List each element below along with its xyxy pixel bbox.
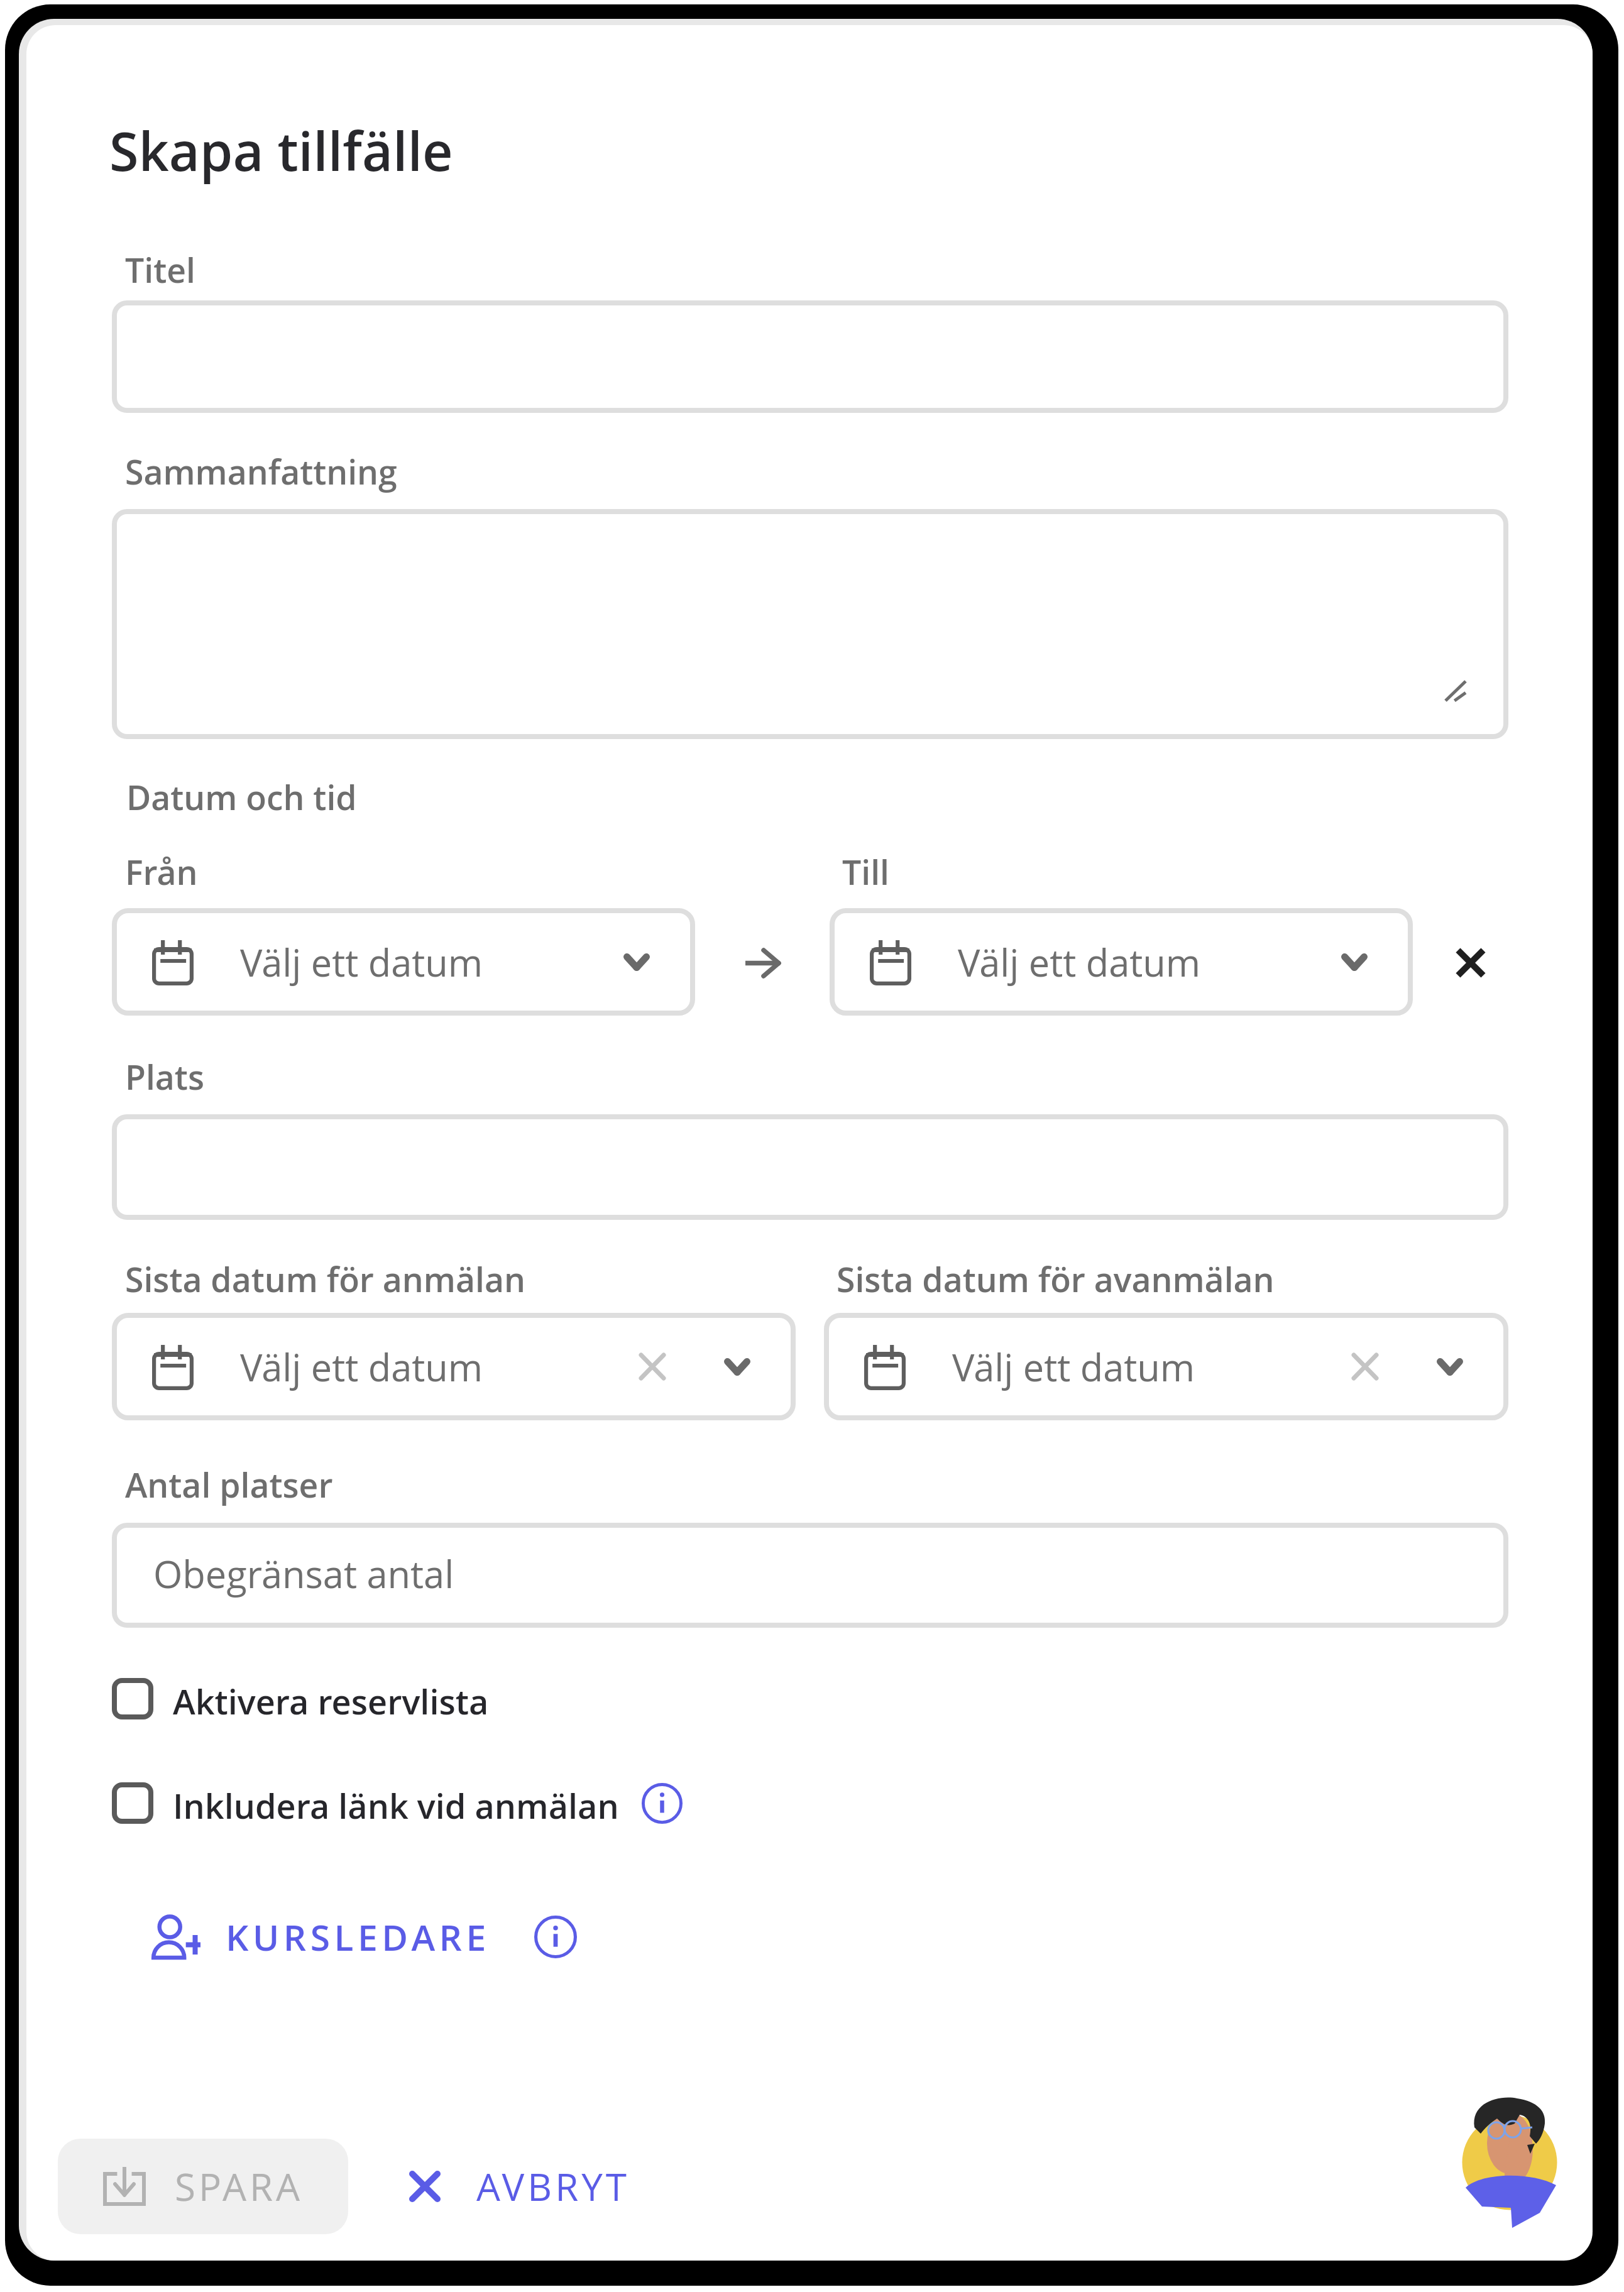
button[interactable] — [112, 300, 1508, 413]
staticText: AVBRYT — [476, 2161, 630, 2212]
staticText: Välj ett datum — [240, 936, 483, 987]
button[interactable]: Välj ett datum — [830, 908, 1413, 1016]
staticText: Obegränsat antal — [153, 1548, 454, 1599]
button[interactable]: Information — [642, 1783, 683, 1824]
button[interactable] — [112, 1523, 1508, 1628]
staticText: Titel — [125, 247, 195, 293]
button[interactable]: Hjälp och support — [1462, 2093, 1557, 2237]
staticText: Skapa tillfälle — [109, 114, 453, 187]
staticText: Välj ett datum — [240, 1341, 483, 1392]
button[interactable]: Välj ett datum — [112, 1313, 796, 1420]
staticText: Till — [842, 849, 890, 895]
staticText: KURSLEDARE — [226, 1912, 490, 1961]
staticText: Sista datum för avanmälan — [837, 1256, 1275, 1302]
staticText: Från — [125, 849, 198, 895]
staticText: Plats — [125, 1054, 204, 1100]
staticText: Aktivera reservlista — [173, 1678, 489, 1719]
button[interactable]: AVBRYT — [379, 2139, 661, 2234]
button[interactable]: Aktivera reservlista — [112, 1678, 489, 1719]
staticText: Datum och tid — [126, 774, 357, 820]
button[interactable]: Ta bort datum — [1446, 938, 1496, 988]
button[interactable]: Välj ett datum — [824, 1313, 1508, 1420]
button[interactable] — [112, 1114, 1508, 1220]
staticText: Sammanfattning — [125, 449, 397, 495]
button[interactable]: Välj ett datum — [112, 908, 695, 1016]
staticText: Antal platser — [125, 1462, 333, 1508]
button[interactable] — [112, 509, 1508, 739]
staticText: Välj ett datum — [952, 1341, 1195, 1392]
staticText: Inkludera länk vid anmälan — [173, 1782, 619, 1824]
button[interactable]: Information — [534, 1916, 577, 1958]
button[interactable]: Inkludera länk vid anmälan — [112, 1782, 683, 1824]
button[interactable]: SPARA — [58, 2139, 348, 2234]
staticText: Sista datum för anmälan — [125, 1256, 525, 1302]
staticText: Välj ett datum — [958, 936, 1201, 987]
staticText: SPARA — [175, 2161, 304, 2212]
button[interactable]: KURSLEDARE — [153, 1899, 577, 1975]
